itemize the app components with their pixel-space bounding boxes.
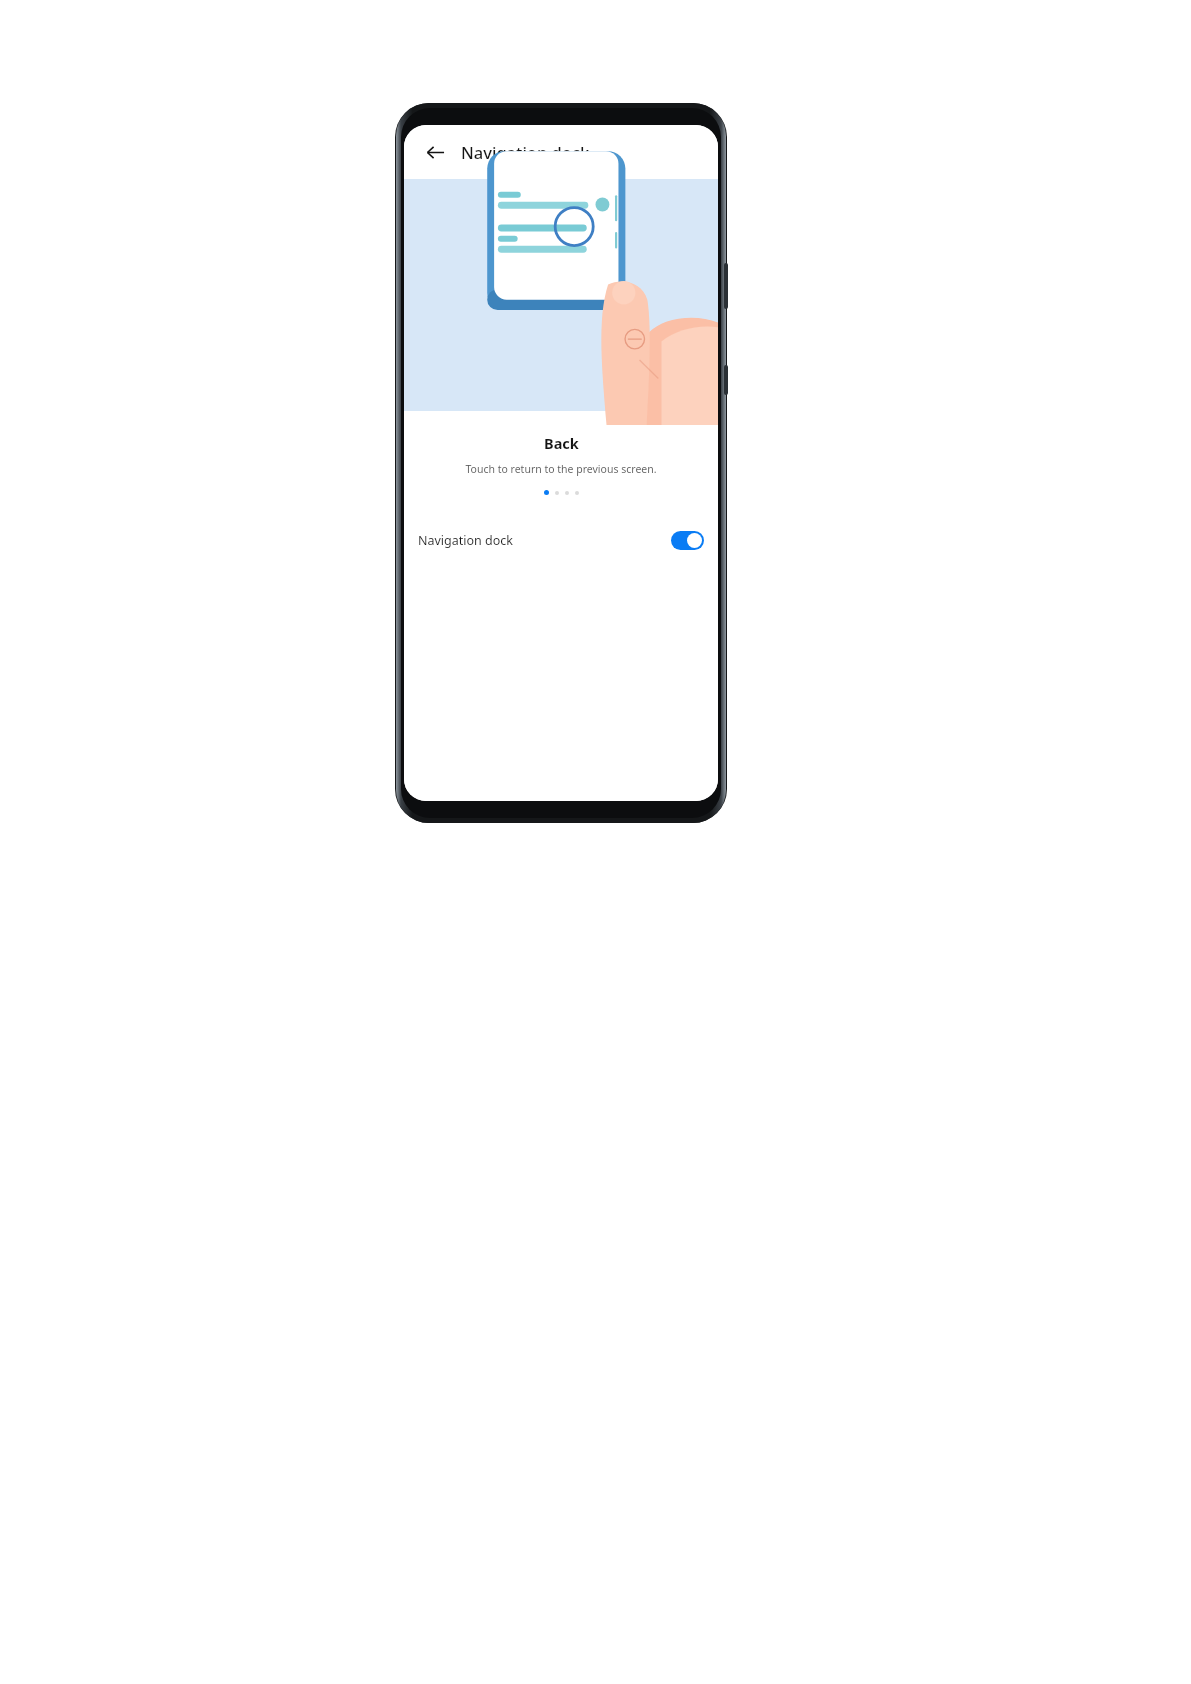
staticText: Touch to return to the previous screen. [465,462,657,476]
staticText: Back [544,433,579,453]
button[interactable]: Back [418,135,452,169]
button[interactable]: Navigation dock toggle, on [671,531,704,550]
staticText: Navigation dock [418,532,513,549]
button[interactable]: Navigation dock [404,517,718,563]
staticText: Navigation dock [461,141,590,163]
